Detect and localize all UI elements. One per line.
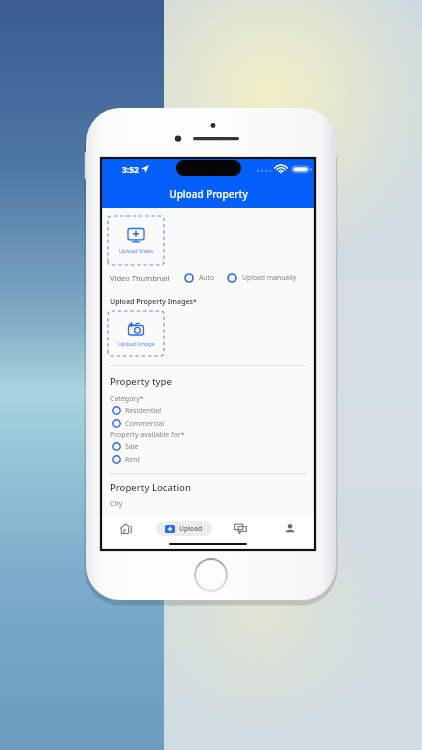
staticText: Commercial: [125, 419, 165, 429]
staticText: 3:52: [122, 164, 139, 176]
staticText: Residential: [125, 406, 162, 416]
button[interactable]: Commercial: [101, 417, 315, 430]
button[interactable]: Upload Video: [108, 216, 164, 265]
button[interactable]: Sale: [101, 440, 315, 453]
staticText: Auto: [199, 273, 215, 282]
staticText: Property Location: [110, 481, 191, 494]
staticText: Upload Property: [169, 187, 248, 201]
button[interactable]: Residential: [101, 404, 315, 417]
staticText: Property available for*: [110, 430, 185, 440]
staticText: Category*: [110, 394, 144, 404]
staticText: Sale: [125, 442, 139, 452]
staticText: Upload Property Images*: [110, 297, 197, 307]
button[interactable]: Upload: [156, 521, 212, 536]
staticText: City: [110, 499, 123, 509]
button[interactable]: Rent: [101, 453, 315, 466]
button[interactable]: Select option: [183, 272, 194, 283]
staticText: Upload Video: [119, 247, 154, 254]
button[interactable]: Profile: [265, 516, 315, 540]
staticText: Upload: [179, 524, 203, 533]
button[interactable]: Upload Image: [108, 311, 164, 356]
staticText: Video Thumbnail: [110, 273, 170, 283]
button[interactable]: Select option: [226, 272, 237, 283]
button[interactable]: Home: [101, 516, 152, 540]
staticText: Upload Image: [118, 340, 155, 347]
staticText: Upload manually: [242, 273, 297, 282]
staticText: Property type: [110, 375, 172, 388]
staticText: Rent: [125, 455, 141, 465]
button[interactable]: Messages: [215, 516, 265, 540]
